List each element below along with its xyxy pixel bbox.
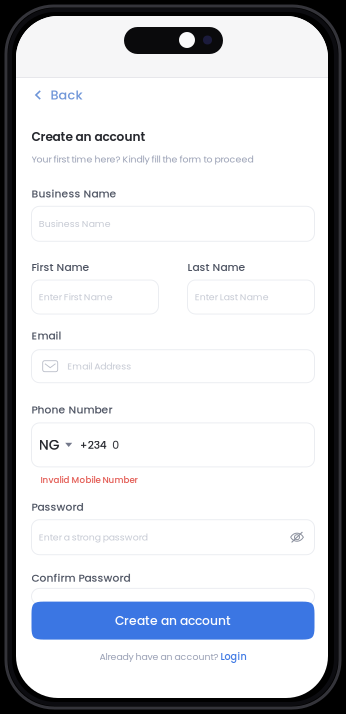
button[interactable]: Login — [220, 650, 246, 663]
staticText: Business Name — [39, 217, 111, 230]
staticText: Back — [50, 86, 82, 104]
staticText: +234 — [80, 437, 107, 452]
staticText: Your first time here? Kindly fill the fo… — [31, 153, 253, 166]
staticText: 0 — [112, 437, 119, 452]
staticText: Enter Last Name — [195, 290, 269, 304]
button[interactable]: Enter Last Name — [187, 280, 314, 314]
button[interactable]: Create an account — [31, 602, 314, 640]
staticText: Email Address — [67, 360, 131, 373]
button[interactable]: Business Name — [31, 206, 314, 241]
staticText: Enter a strong password — [39, 531, 148, 544]
staticText: NG — [39, 435, 60, 455]
staticText: Password — [31, 499, 83, 514]
button[interactable]: Back — [16, 79, 136, 111]
staticText: Email — [31, 328, 61, 343]
staticText: Already have an account? — [99, 650, 220, 663]
staticText: Business Name — [31, 186, 116, 201]
button[interactable]: Enter First Name — [31, 280, 158, 314]
staticText: Confirm Password — [31, 570, 130, 585]
staticText: Create an account — [31, 128, 145, 145]
staticText: Create an account — [115, 612, 231, 629]
staticText: Login — [220, 650, 246, 663]
staticText: Last Name — [187, 260, 245, 275]
staticText: Invalid Mobile Number — [40, 474, 137, 486]
staticText: Enter First Name — [39, 290, 113, 304]
staticText: First Name — [31, 260, 89, 275]
button[interactable]: Enter a strong password — [31, 520, 314, 555]
button[interactable]: NG — [31, 423, 314, 467]
button[interactable]: Email Address — [31, 350, 314, 383]
staticText: Phone Number — [31, 402, 112, 417]
